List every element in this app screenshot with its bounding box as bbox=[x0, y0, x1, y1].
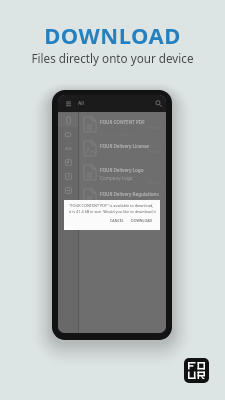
staticText: FOUR Delivery Regulations bbox=[100, 191, 159, 197]
staticText: Version 1 bbox=[100, 198, 162, 202]
button[interactable]: Navigation item 6 bbox=[58, 197, 78, 211]
button[interactable]: FOUR Delivery License bbox=[79, 138, 166, 162]
button[interactable]: Navigation item 2 bbox=[58, 141, 78, 155]
button[interactable]: FOUR logo bbox=[184, 358, 209, 383]
button[interactable]: Navigation item 1 bbox=[58, 127, 78, 141]
staticText: FOUR CONTENT PDF bbox=[100, 119, 145, 125]
button[interactable]: CANCEL bbox=[110, 218, 124, 223]
other: Menu bbox=[66, 101, 71, 106]
button[interactable]: Navigation item 3 bbox=[58, 155, 78, 169]
button[interactable]: Navigation item 0 bbox=[58, 113, 78, 127]
staticText: "FOUR CONTENT PDF" is available to downl… bbox=[69, 203, 154, 208]
staticText: Files directly onto your device bbox=[31, 50, 194, 66]
staticText: DOWNLOAD bbox=[44, 20, 181, 50]
button[interactable]: DOWNLOAD bbox=[131, 218, 153, 223]
button[interactable]: Navigation item 4 bbox=[58, 169, 78, 183]
button[interactable]: Navigation item 5 bbox=[58, 183, 78, 197]
staticText: FOUR Delivery License bbox=[100, 143, 149, 149]
button[interactable]: FOUR Delivery Regulations bbox=[79, 186, 166, 210]
other: Search bbox=[155, 100, 162, 107]
staticText: FOUR Delivery Logo bbox=[100, 167, 144, 173]
button[interactable]: FOUR Delivery Logo bbox=[79, 162, 166, 186]
staticText: All bbox=[78, 100, 84, 107]
button[interactable]: Menu bbox=[58, 95, 166, 112]
button[interactable]: Accessible downloads bbox=[79, 114, 166, 138]
staticText: Company Logo bbox=[100, 175, 133, 181]
staticText: it is 41.4 kB in size. Would you like to… bbox=[69, 209, 156, 214]
